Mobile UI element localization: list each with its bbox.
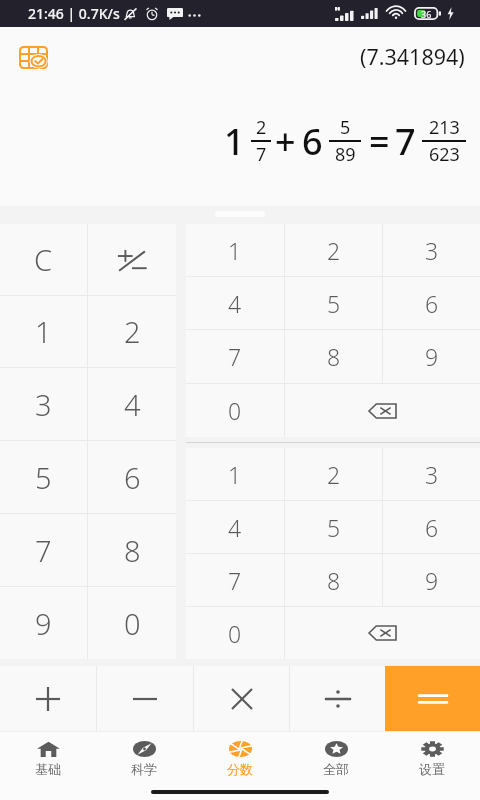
staticText: 1 [228, 459, 242, 490]
staticText: 7 [256, 142, 267, 167]
button[interactable]: 基础 [0, 732, 96, 784]
staticText: 1 [35, 312, 52, 351]
staticText: 623 [429, 142, 460, 167]
staticText: 6 [302, 117, 323, 166]
staticText: 全部 [323, 761, 349, 777]
staticText: 基础 [35, 761, 61, 777]
button[interactable]: div [290, 666, 385, 731]
button[interactable]: minus [97, 666, 193, 731]
button[interactable]: 设置 [384, 732, 480, 784]
staticText: = [369, 117, 390, 166]
button[interactable]: 6 [88, 441, 176, 513]
staticText: 6 [425, 288, 439, 319]
staticText: 5 [35, 458, 52, 497]
staticText: 4 [228, 512, 242, 543]
staticText: 8 [327, 341, 341, 372]
button[interactable]: History [11, 35, 56, 80]
staticText: 4 [228, 288, 242, 319]
staticText: 2 [327, 235, 341, 266]
staticText: 3 [425, 235, 439, 266]
button[interactable]: 1 [186, 224, 284, 276]
staticText: 0 [124, 604, 141, 643]
staticText: 7 [228, 565, 242, 596]
staticText: 2 [327, 459, 341, 490]
button[interactable]: 0 [186, 607, 284, 659]
staticText: 213 [429, 115, 460, 140]
button[interactable]: 3 [383, 224, 480, 276]
staticText: 分数 [227, 761, 253, 777]
staticText: 9 [425, 341, 439, 372]
button[interactable]: 9 [0, 587, 87, 659]
staticText: 7 [395, 117, 416, 166]
staticText: (7.341894) [360, 42, 465, 71]
staticText: 1 [228, 235, 242, 266]
button[interactable]: 5 [0, 441, 87, 513]
staticText: 设置 [419, 761, 445, 777]
button[interactable]: 8 [285, 330, 382, 383]
button[interactable]: 1 [186, 448, 284, 500]
staticText: 6 [425, 512, 439, 543]
staticText: 5 [327, 288, 341, 319]
staticText: C [34, 240, 53, 279]
button[interactable]: Equals [385, 666, 480, 731]
staticText: 2 [256, 115, 267, 140]
staticText: 0 [228, 618, 242, 649]
button[interactable]: 7 [186, 554, 284, 606]
button[interactable]: 3 [0, 368, 87, 440]
button[interactable]: 6 [383, 277, 480, 329]
staticText: 4 [124, 385, 141, 424]
button[interactable]: 6 [383, 501, 480, 553]
button[interactable]: 4 [88, 368, 176, 440]
button[interactable]: plus [0, 666, 96, 731]
button[interactable]: times [194, 666, 289, 731]
staticText: 1 [224, 117, 245, 166]
button[interactable]: 4 [186, 277, 284, 329]
button[interactable]: 2 [88, 296, 176, 367]
button[interactable]: 2 [285, 448, 382, 500]
button[interactable]: 9 [383, 330, 480, 383]
button[interactable]: 7 [186, 330, 284, 383]
button[interactable]: Backspace [285, 384, 480, 437]
staticText: 8 [124, 531, 141, 570]
staticText: 7 [228, 341, 242, 372]
button[interactable]: 5 [285, 501, 382, 553]
button[interactable]: 7 [0, 514, 87, 586]
button[interactable]: 1 [0, 296, 87, 367]
staticText: 7 [35, 531, 52, 570]
staticText: 0 [228, 395, 242, 426]
staticText: + [275, 117, 296, 166]
button[interactable]: 分数 [192, 732, 288, 784]
button[interactable]: 9 [383, 554, 480, 606]
staticText: 89 [335, 142, 356, 167]
button[interactable]: 0 [88, 587, 176, 659]
staticText: 2 [124, 312, 141, 351]
staticText: 5 [327, 512, 341, 543]
staticText: 8 [327, 565, 341, 596]
button[interactable]: 8 [285, 554, 382, 606]
button[interactable]: 全部 [288, 732, 384, 784]
button[interactable] [88, 224, 176, 295]
staticText: 3 [35, 385, 52, 424]
staticText: 9 [425, 565, 439, 596]
staticText: 科学 [131, 761, 157, 777]
staticText: 21:46 | 0.7K/s [28, 4, 120, 23]
staticText: 5 [340, 115, 351, 140]
button[interactable]: 科学 [96, 732, 192, 784]
staticText: 36 [421, 8, 432, 20]
button[interactable]: 8 [88, 514, 176, 586]
button[interactable]: C [0, 224, 87, 295]
staticText: 6 [124, 458, 141, 497]
button[interactable]: Backspace [285, 607, 480, 659]
button[interactable]: 2 [285, 224, 382, 276]
button[interactable]: 0 [186, 384, 284, 437]
button[interactable]: 4 [186, 501, 284, 553]
staticText: 9 [35, 604, 52, 643]
button[interactable]: 3 [383, 448, 480, 500]
button[interactable]: 5 [285, 277, 382, 329]
staticText: 3 [425, 459, 439, 490]
